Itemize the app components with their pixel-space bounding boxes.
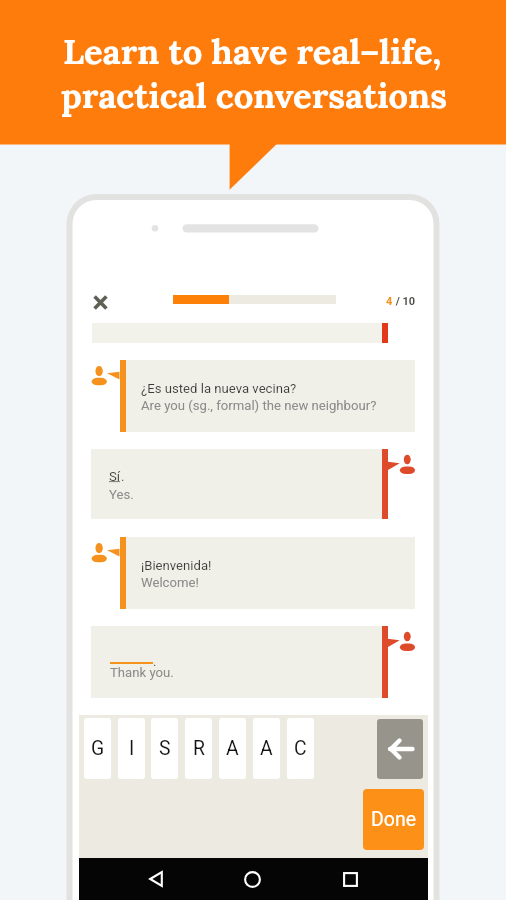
staticText: R bbox=[193, 737, 205, 760]
staticText: G bbox=[91, 737, 105, 760]
staticText: Are you (sg., formal) the new neighbour? bbox=[141, 398, 377, 413]
button[interactable]: R bbox=[185, 718, 212, 779]
button[interactable]: A bbox=[253, 718, 280, 779]
staticText: A bbox=[226, 737, 239, 760]
staticText: ¡Bienvenida! bbox=[141, 558, 212, 573]
staticText: A bbox=[260, 737, 273, 760]
button[interactable]: I bbox=[118, 718, 145, 779]
button[interactable]: S bbox=[151, 718, 178, 779]
button[interactable]: Recent apps bbox=[330, 858, 370, 900]
button[interactable]: Back bbox=[136, 858, 176, 900]
button[interactable]: Done bbox=[363, 789, 424, 850]
staticText: / 10 bbox=[393, 295, 416, 308]
staticText: . bbox=[153, 654, 157, 669]
staticText: Welcome! bbox=[141, 575, 199, 590]
staticText: Yes. bbox=[109, 487, 134, 502]
button[interactable]: G bbox=[84, 718, 111, 779]
button[interactable]: C bbox=[287, 718, 314, 779]
button[interactable] bbox=[91, 449, 382, 519]
button[interactable]: Backspace bbox=[377, 719, 423, 779]
button[interactable]: Close bbox=[82, 283, 118, 321]
staticText: S bbox=[159, 737, 171, 760]
staticText: I bbox=[129, 737, 135, 760]
staticText: Sí bbox=[109, 469, 121, 484]
button[interactable] bbox=[91, 626, 382, 698]
staticText: 4 bbox=[386, 295, 393, 308]
button[interactable] bbox=[120, 360, 415, 432]
staticText: . bbox=[121, 469, 125, 484]
staticText: practical conversations bbox=[61, 73, 447, 117]
staticText: ¿Es usted la nueva vecina? bbox=[141, 381, 297, 396]
button[interactable] bbox=[120, 537, 415, 609]
staticText: Done bbox=[371, 808, 417, 831]
staticText: Learn to have real–life, bbox=[63, 29, 442, 73]
staticText: Thank you. bbox=[110, 665, 174, 680]
button[interactable]: A bbox=[219, 718, 246, 779]
staticText: C bbox=[294, 737, 307, 760]
button[interactable]: Home bbox=[232, 858, 272, 900]
